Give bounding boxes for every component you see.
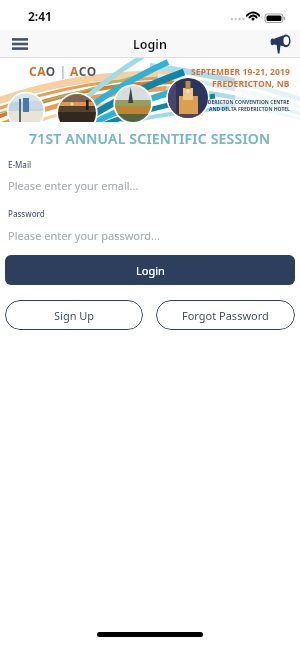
staticText: E-Mail	[8, 159, 32, 170]
staticText: 71ST ANNUAL SCIENTIFIC SESSION	[29, 129, 271, 148]
staticText: Password	[8, 208, 45, 219]
staticText: CAO | ACO	[29, 63, 97, 79]
button[interactable]	[6, 30, 34, 58]
staticText: Login	[136, 263, 165, 278]
staticText: 2:41	[28, 8, 52, 24]
button[interactable]	[266, 30, 294, 58]
button[interactable]: Forgot Password	[156, 300, 295, 330]
staticText: SEPTEMBER 19-21, 2019	[191, 66, 290, 78]
staticText: Forgot Password	[182, 308, 269, 323]
staticText: FREDERICTON, NB	[212, 78, 290, 90]
button[interactable]: Sign Up	[5, 300, 143, 330]
staticText: Sign Up	[54, 308, 95, 323]
button[interactable]: Login	[5, 255, 295, 285]
staticText: FREDERICTON CONVENTION CENTRE	[199, 99, 290, 106]
staticText: AND DELTA FREDERICTON HOTEL	[209, 106, 290, 113]
staticText: Please enter your email...	[8, 178, 139, 193]
staticText: Login	[133, 36, 167, 53]
staticText: Please enter your password...	[8, 228, 160, 243]
